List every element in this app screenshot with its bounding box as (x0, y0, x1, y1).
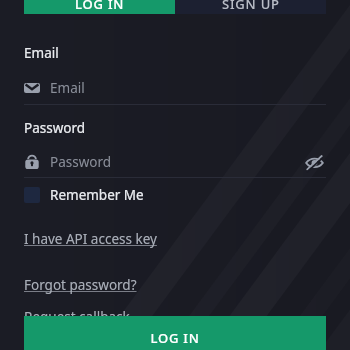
button[interactable]: Forgot password? (24, 276, 137, 294)
button[interactable]: Remember Me (24, 182, 144, 208)
button[interactable]: Email (24, 77, 326, 99)
staticText: Email (50, 79, 85, 97)
button[interactable]: I have API access key (24, 230, 157, 248)
staticText: I have API access key (24, 230, 157, 248)
button[interactable]: LOG IN (24, 316, 326, 350)
staticText: Request callback (24, 308, 130, 326)
staticText: LOG IN (75, 0, 125, 9)
button[interactable]: Show password (302, 151, 326, 173)
button[interactable]: Request callback (24, 308, 130, 326)
button[interactable]: Password (24, 151, 326, 173)
button[interactable]: SIGN UP (175, 0, 326, 14)
button[interactable]: LOG IN (24, 0, 175, 14)
staticText: Password (50, 153, 302, 171)
staticText: Forgot password? (24, 276, 137, 294)
staticText: Email (24, 44, 59, 62)
staticText: LOG IN (150, 329, 200, 347)
staticText: SIGN UP (222, 0, 280, 9)
staticText: Remember Me (50, 186, 144, 204)
staticText: Password (24, 119, 86, 137)
